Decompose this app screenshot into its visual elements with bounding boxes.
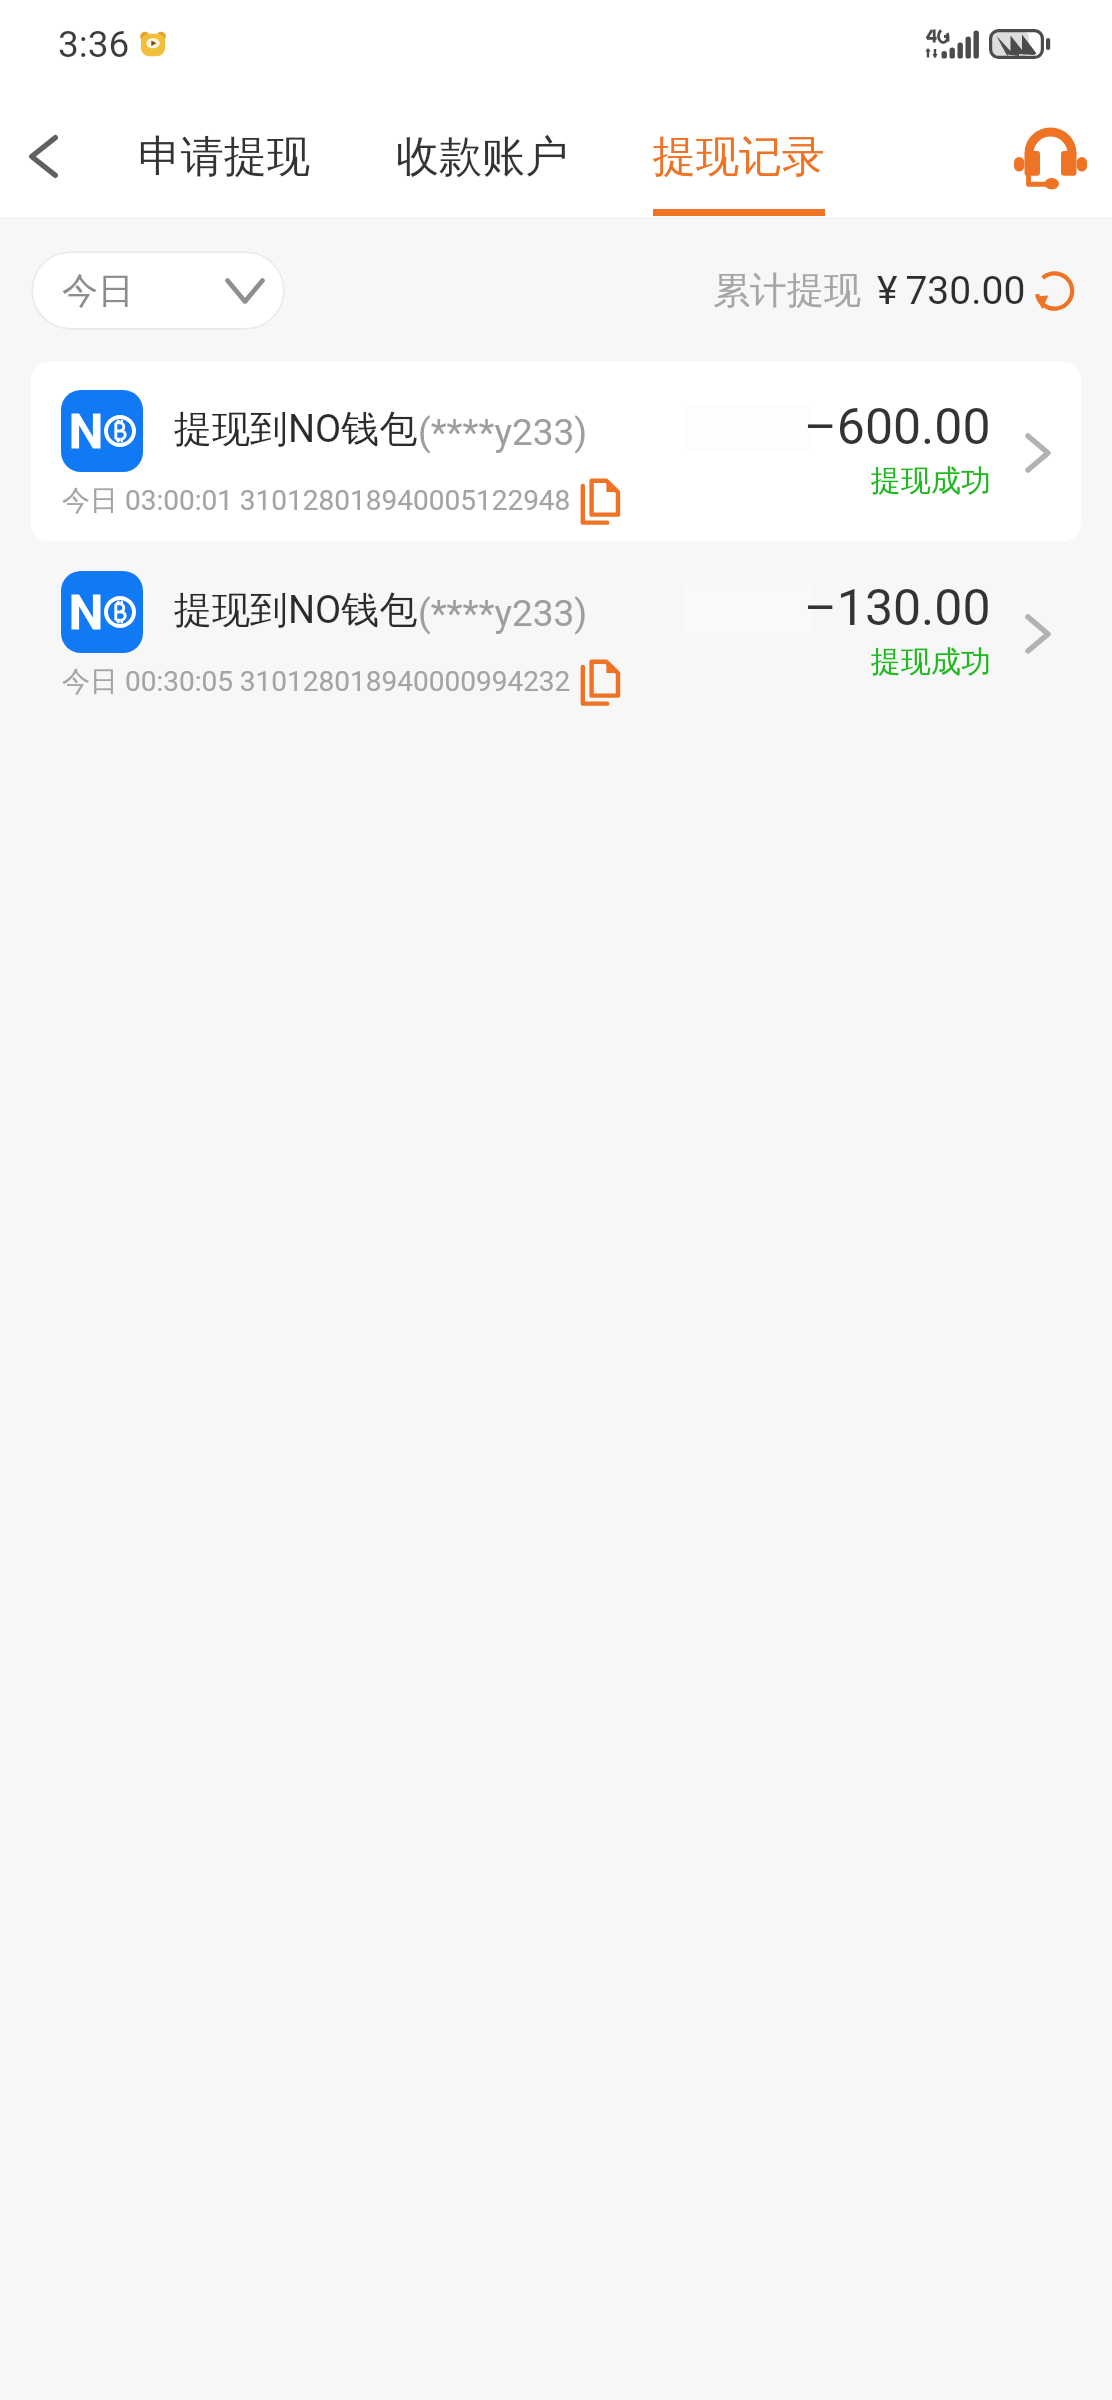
staticText: 提现成功 (871, 462, 991, 500)
staticText: 今日 03:00:01 310128018940005122948 (62, 483, 571, 518)
staticText: 3:36 (58, 23, 130, 66)
staticText: –600.00 (804, 398, 991, 457)
staticText: 提现成功 (871, 643, 991, 681)
staticText: 提现记录 (653, 130, 825, 184)
staticText: 今日 (62, 268, 134, 313)
staticText: (****y233) (418, 592, 588, 635)
staticText: 累计提现 (713, 267, 861, 314)
button[interactable]: Back (0, 100, 100, 218)
staticText: 提现到NO钱包 (174, 405, 418, 453)
staticText: (****y233) (418, 411, 588, 454)
button[interactable]: Copy (573, 653, 627, 711)
button[interactable]: 申请提现 (138, 100, 318, 218)
button[interactable]: Customer service (994, 104, 1106, 212)
staticText: 今日 00:30:05 310128018940000994232 (62, 664, 571, 699)
button[interactable]: 提现记录 (653, 100, 837, 218)
button[interactable]: Copy (573, 472, 627, 530)
staticText: 提现到NO钱包 (174, 586, 418, 634)
button[interactable]: 提现到NO钱包 (31, 362, 1081, 541)
button[interactable]: Refresh (1027, 264, 1081, 318)
button[interactable]: 今日 (31, 251, 285, 330)
button[interactable]: 提现到NO钱包 (31, 543, 1081, 722)
staticText: 申请提现 (138, 130, 310, 184)
button[interactable]: 收款账户 (396, 100, 576, 218)
staticText: –130.00 (804, 579, 991, 638)
staticText: ¥ 730.00 (877, 268, 1026, 314)
staticText: 收款账户 (396, 130, 568, 184)
